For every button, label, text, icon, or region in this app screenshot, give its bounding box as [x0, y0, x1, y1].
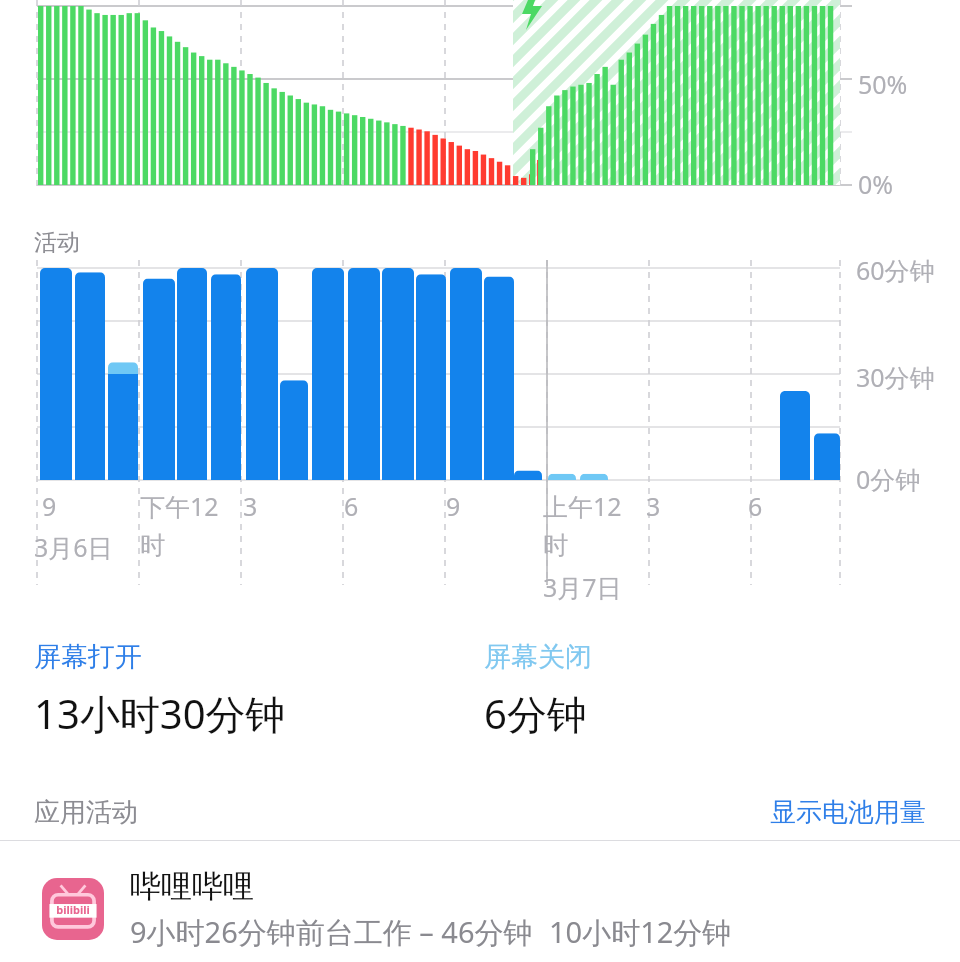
staticText: 3月6日: [34, 530, 113, 564]
staticText: 活动: [34, 228, 80, 257]
staticText: bilibili: [56, 902, 90, 917]
staticText: 屏幕关闭: [484, 640, 592, 674]
staticText: 时: [140, 530, 165, 561]
staticText: 60分钟: [856, 253, 935, 287]
button[interactable]: 显示电池用量: [770, 796, 926, 829]
staticText: 13小时30分钟: [34, 686, 286, 741]
staticText: 0分钟: [856, 462, 921, 496]
button[interactable]: 哔哩哔哩: [0, 856, 960, 962]
staticText: 0%: [858, 167, 894, 201]
staticText: 3: [243, 489, 258, 523]
staticText: 30分钟: [856, 360, 935, 394]
staticText: 显示电池用量: [770, 796, 926, 829]
staticText: 哔哩哔哩: [130, 867, 254, 906]
staticText: 10小时12分钟: [549, 912, 732, 952]
staticText: 6分钟: [484, 686, 587, 741]
staticText: 应用活动: [34, 796, 138, 829]
staticText: 6: [748, 489, 763, 523]
staticText: 3月7日: [543, 570, 622, 604]
staticText: 9: [42, 489, 57, 523]
staticText: 屏幕打开: [34, 640, 142, 674]
other: 哔哩哔哩: [42, 878, 104, 940]
staticText: 下午12: [140, 489, 219, 523]
staticText: 9小时26分钟前台工作 – 46分钟: [130, 912, 533, 952]
staticText: 50%: [858, 67, 908, 101]
staticText: 9: [446, 489, 461, 523]
staticText: 6: [344, 489, 359, 523]
staticText: 3: [646, 489, 661, 523]
staticText: 时: [543, 530, 568, 561]
staticText: 上午12: [543, 489, 622, 523]
